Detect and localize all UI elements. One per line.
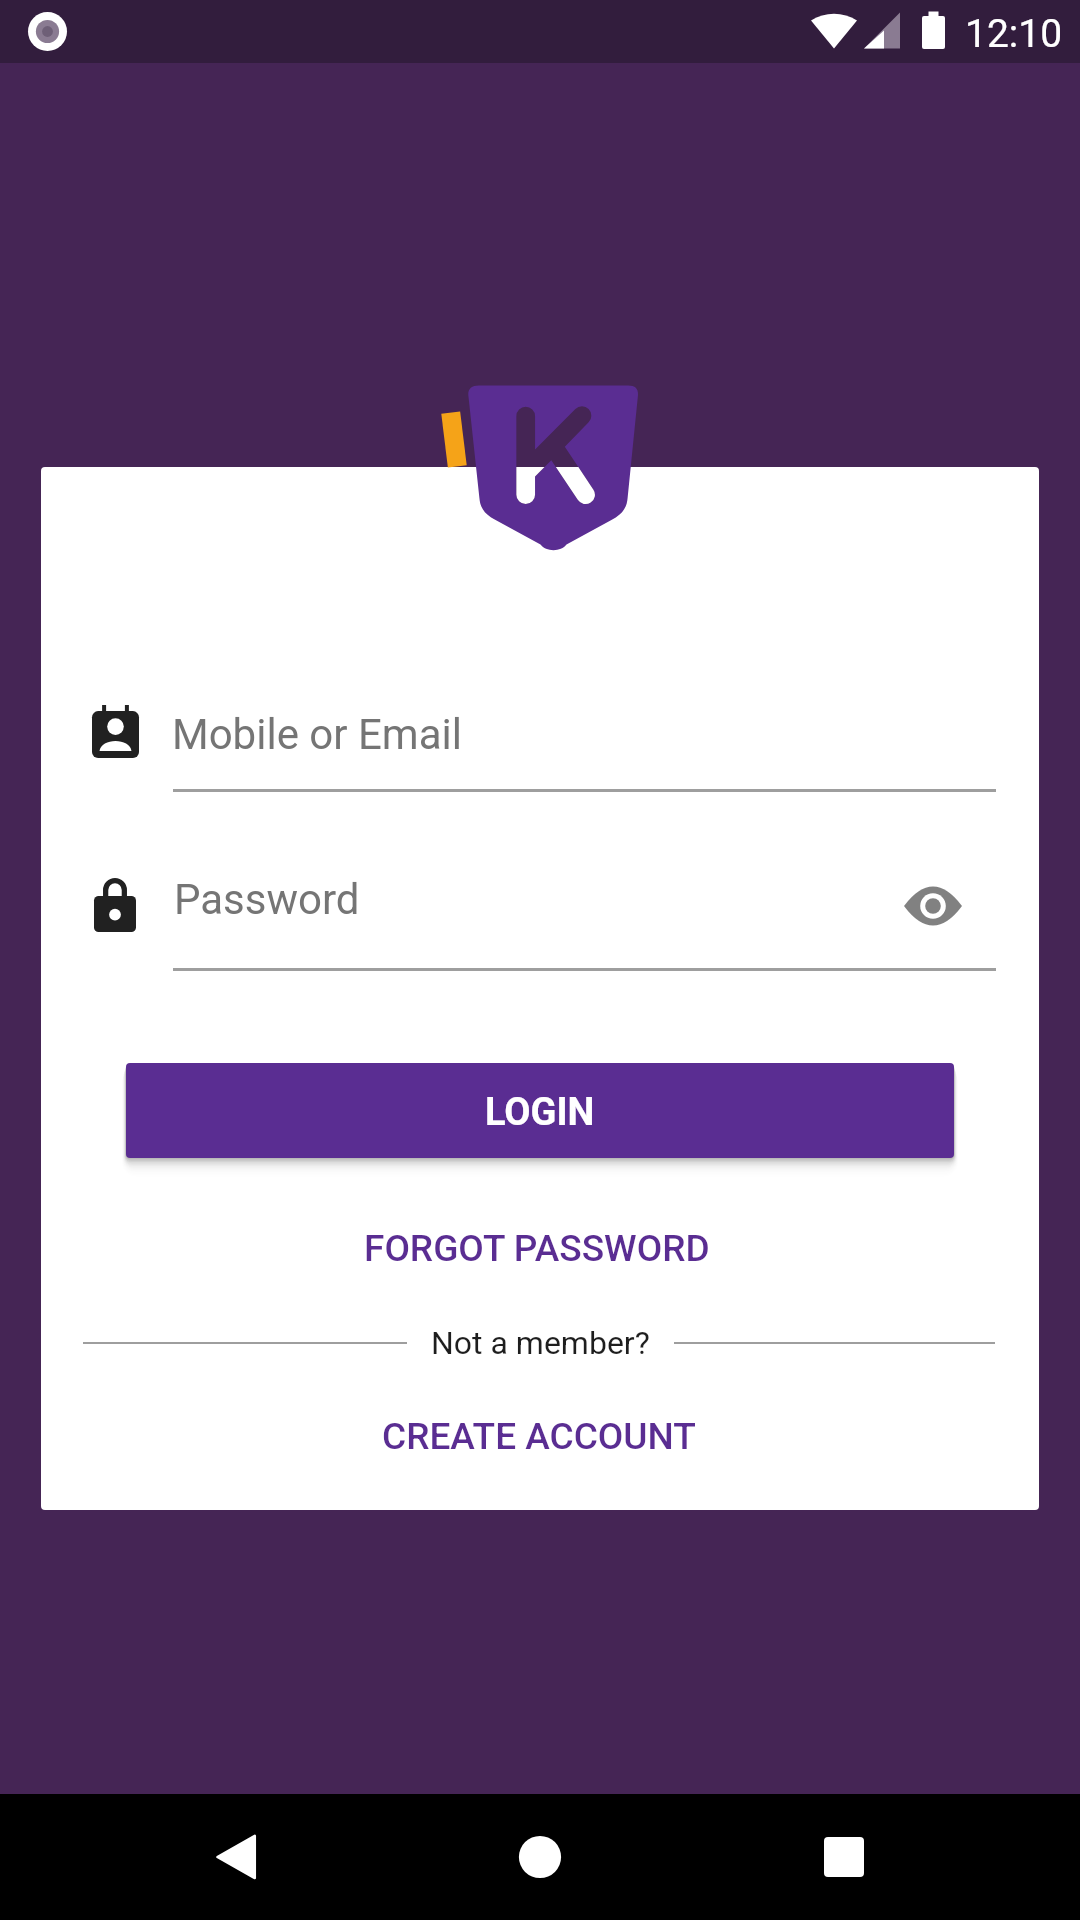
button[interactable]: LOGIN [126, 1063, 954, 1158]
staticText: FORGOT PASSWORD [364, 1227, 710, 1270]
staticText: Not a member? [431, 1324, 650, 1362]
staticText: 12:10 [965, 11, 1063, 57]
button[interactable]: Mobile or Email [84, 692, 1004, 792]
staticText: Password [174, 875, 360, 924]
button[interactable]: FORGOT PASSWORD [287, 1203, 787, 1293]
button[interactable]: Recent apps [784, 1794, 904, 1920]
button[interactable]: Password [84, 866, 1004, 971]
staticText: CREATE ACCOUNT [382, 1415, 696, 1458]
button[interactable]: Show password [893, 866, 973, 946]
button[interactable]: Home [480, 1794, 600, 1920]
staticText: LOGIN [485, 1090, 595, 1135]
button[interactable]: Back [176, 1794, 296, 1920]
button[interactable]: CREATE ACCOUNT [319, 1393, 759, 1479]
staticText: Mobile or Email [172, 710, 462, 759]
